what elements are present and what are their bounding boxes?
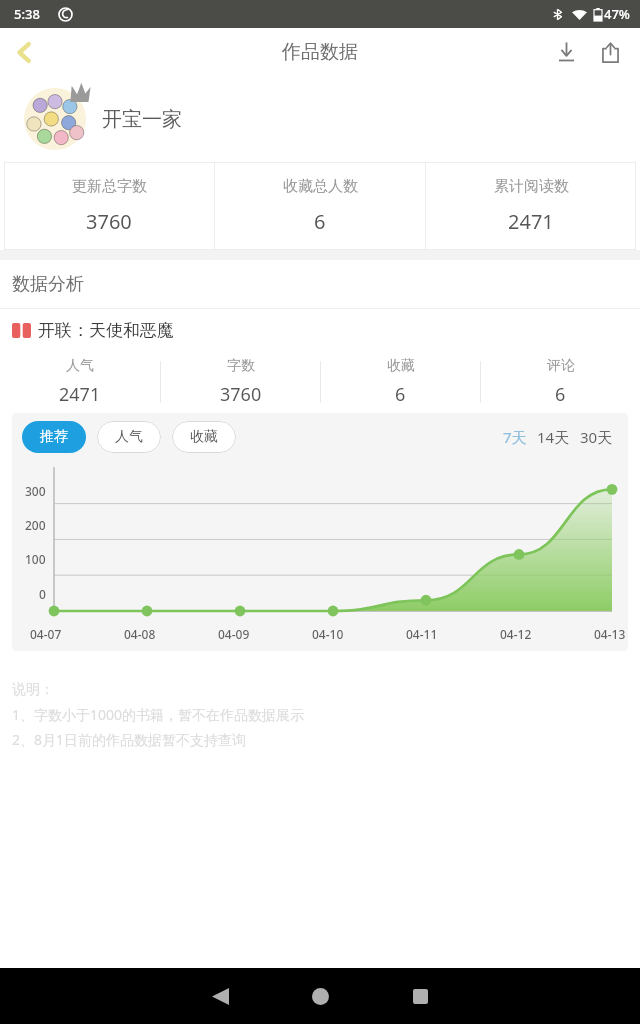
button[interactable]: 14天: [532, 427, 575, 447]
button[interactable]: Back: [0, 28, 48, 76]
staticText: 0: [39, 586, 46, 602]
staticText: 累计阅读数: [494, 177, 569, 196]
staticText: 2471: [59, 382, 101, 407]
staticText: 收藏: [190, 428, 218, 446]
staticText: 04-09: [218, 626, 250, 642]
staticText: 3760: [86, 208, 132, 235]
staticText: 开宝一家: [102, 107, 182, 132]
staticText: 04-11: [406, 626, 438, 642]
staticText: 更新总字数: [72, 177, 147, 196]
button[interactable]: Back: [192, 968, 248, 1024]
staticText: 5:38: [14, 5, 40, 23]
button[interactable]: 人气: [0, 357, 160, 407]
staticText: 收藏总人数: [283, 177, 358, 196]
staticText: 2471: [508, 208, 554, 235]
button[interactable]: Home: [292, 968, 348, 1024]
button[interactable]: 收藏: [321, 357, 480, 407]
staticText: 100: [25, 551, 46, 567]
staticText: 200: [25, 517, 46, 533]
staticText: 人气: [66, 357, 94, 375]
staticText: 人气: [115, 428, 143, 446]
staticText: 47%: [604, 5, 630, 23]
button[interactable]: 30天: [575, 427, 618, 447]
staticText: 字数: [227, 357, 255, 375]
button[interactable]: 字数: [161, 357, 320, 407]
button[interactable]: 更新总字数: [4, 162, 214, 250]
button[interactable]: 收藏总人数: [215, 162, 425, 250]
staticText: 2、8月1日前的作品数据暂不支持查询: [12, 730, 247, 749]
staticText: 04-12: [500, 626, 532, 642]
button[interactable]: 推荐: [22, 421, 86, 453]
staticText: 收藏: [387, 357, 415, 375]
staticText: 3760: [220, 382, 262, 407]
staticText: 04-08: [124, 626, 156, 642]
button[interactable]: 开联：天使和恶魔: [0, 309, 640, 351]
staticText: 数据分析: [12, 273, 84, 296]
staticText: 6: [314, 208, 326, 235]
button[interactable]: 人气: [97, 421, 161, 453]
staticText: 1、字数小于1000的书籍，暂不在作品数据展示: [12, 705, 305, 724]
staticText: 04-10: [312, 626, 344, 642]
staticText: 说明：: [12, 681, 54, 699]
staticText: 作品数据: [282, 40, 358, 64]
staticText: 6: [395, 382, 406, 407]
staticText: 开联：天使和恶魔: [38, 320, 174, 341]
button[interactable]: Share: [588, 30, 632, 74]
staticText: 04-07: [30, 626, 62, 642]
staticText: 评论: [547, 357, 575, 375]
button[interactable]: 收藏: [172, 421, 236, 453]
button[interactable]: 评论: [481, 357, 640, 407]
button[interactable]: 开宝一家: [0, 76, 640, 162]
staticText: 推荐: [40, 428, 68, 446]
button[interactable]: Recents: [392, 968, 448, 1024]
staticText: 300: [25, 483, 46, 499]
button[interactable]: Download: [544, 30, 588, 74]
button[interactable]: 累计阅读数: [426, 162, 636, 250]
button[interactable]: 7天: [498, 427, 532, 447]
staticText: 04-13: [594, 626, 626, 642]
staticText: 6: [555, 382, 566, 407]
